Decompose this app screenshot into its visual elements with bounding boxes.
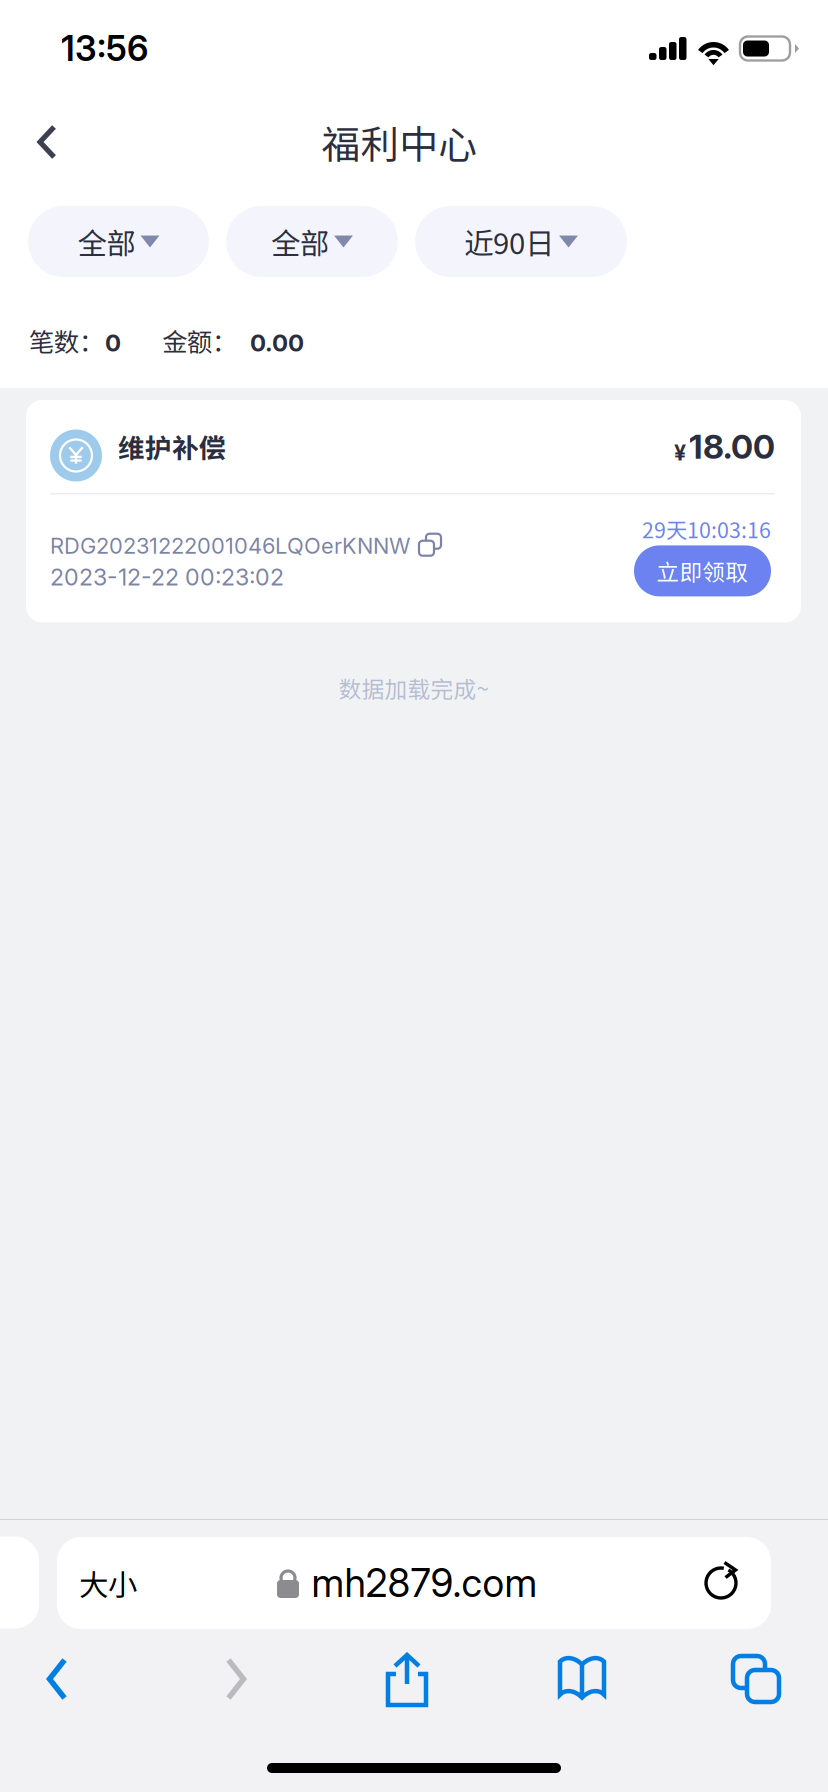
staticText: 大小 xyxy=(79,1562,137,1604)
staticText: 2023-12-22 00:23:02 xyxy=(50,563,284,591)
staticText: 0.00 xyxy=(250,328,304,357)
button[interactable]: 全部 xyxy=(226,206,398,277)
staticText: RDG20231222001046LQOerKNNW xyxy=(50,532,410,559)
staticText: 全部 xyxy=(77,220,135,263)
button[interactable]: Share xyxy=(358,1633,456,1725)
staticText: 福利中心 xyxy=(321,114,477,170)
staticText: mh2879.com xyxy=(311,1560,537,1606)
staticText: 近90日 xyxy=(464,220,554,263)
button[interactable]: 全部 xyxy=(28,206,209,277)
staticText: 18.00 xyxy=(689,426,775,467)
staticText: 立即领取 xyxy=(656,554,748,587)
staticText: 29天10:03:16 xyxy=(642,513,771,544)
button[interactable]: Back xyxy=(0,105,83,179)
button[interactable]: Forward xyxy=(114,1633,358,1725)
staticText: 0 xyxy=(105,328,121,357)
staticText: 全部 xyxy=(271,220,329,263)
staticText: 维护补偿 xyxy=(118,427,226,466)
staticText: 笔数： xyxy=(29,322,104,359)
staticText: 数据加载完成~ xyxy=(338,671,489,704)
staticText: ¥ xyxy=(674,440,686,466)
button[interactable]: Reload page xyxy=(681,1540,771,1626)
button[interactable]: Copy order number xyxy=(415,535,437,557)
button[interactable]: 大小 xyxy=(57,1538,167,1628)
button[interactable]: Bookmarks xyxy=(456,1633,708,1725)
button[interactable]: Back xyxy=(0,1633,114,1725)
button[interactable]: Tabs xyxy=(708,1633,828,1725)
button[interactable]: 近90日 xyxy=(415,206,627,277)
button[interactable]: 立即领取 xyxy=(634,545,771,596)
staticText: 金额： xyxy=(162,322,237,359)
staticText: 13:56 xyxy=(61,27,148,69)
